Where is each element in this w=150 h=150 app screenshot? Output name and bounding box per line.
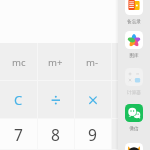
staticText: 7	[14, 124, 23, 145]
staticText: C	[14, 91, 23, 109]
button[interactable]: mc	[0, 43, 37, 81]
button[interactable]: m-	[74, 43, 111, 81]
button[interactable]: C	[0, 81, 37, 119]
button[interactable]: 9	[74, 119, 111, 150]
button[interactable]	[111, 81, 148, 119]
button[interactable]	[111, 119, 148, 150]
button[interactable]: 图库	[118, 31, 150, 58]
button[interactable]	[74, 81, 111, 119]
staticText: 备忘录	[127, 19, 141, 24]
staticText: 微信	[129, 126, 139, 131]
staticText: mc	[12, 56, 26, 69]
button[interactable]: 8	[37, 119, 74, 150]
staticText: m+	[48, 56, 63, 69]
button[interactable]	[37, 81, 74, 119]
button[interactable]: m+	[37, 43, 74, 81]
staticText: 图库	[129, 53, 139, 58]
button[interactable]	[118, 143, 150, 150]
staticText: 计算器	[127, 90, 141, 95]
staticText: 9	[88, 124, 97, 145]
staticText: 8	[51, 124, 60, 145]
button[interactable]: 计算器	[118, 68, 150, 95]
button[interactable]: 微信	[118, 104, 150, 131]
button[interactable]	[111, 43, 148, 81]
button[interactable]: 7	[0, 119, 37, 150]
staticText: m-	[86, 56, 99, 69]
button[interactable]: 备忘录	[118, 0, 150, 24]
